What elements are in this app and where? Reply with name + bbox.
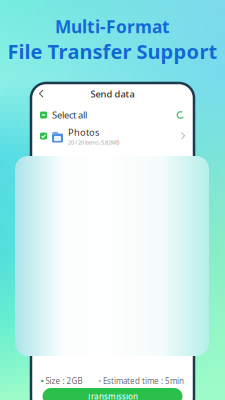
staticText: Select all xyxy=(52,109,87,121)
button[interactable]: Transmission xyxy=(42,388,182,400)
staticText: 20 / 20 items, 5.82MB xyxy=(68,139,119,146)
staticText: Photos xyxy=(68,126,99,138)
staticText: Estimated time : 5min xyxy=(101,376,184,386)
staticText: Send data xyxy=(90,88,134,100)
staticText: File Transfer Support xyxy=(7,38,217,65)
staticText: Transmission xyxy=(87,391,138,400)
staticText: Multi-Format xyxy=(55,15,170,38)
staticText: Size : 2GB xyxy=(43,376,82,386)
